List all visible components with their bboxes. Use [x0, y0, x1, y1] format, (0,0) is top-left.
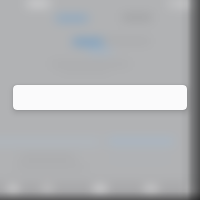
button[interactable] [13, 85, 187, 110]
